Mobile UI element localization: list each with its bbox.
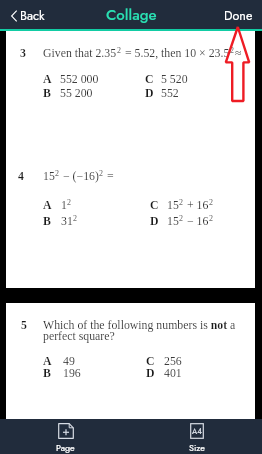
staticText: Given that 2.35	[43, 46, 117, 59]
staticText: Back	[20, 7, 45, 25]
other: Page size	[190, 423, 204, 439]
button[interactable]: Page size	[131, 419, 262, 454]
staticText: D	[145, 86, 154, 99]
staticText: 2	[67, 198, 72, 207]
staticText: 2	[230, 46, 235, 55]
staticText: A	[43, 198, 52, 211]
staticText: C	[145, 72, 154, 85]
staticText: D	[146, 366, 155, 379]
staticText: C	[150, 198, 159, 211]
staticText: B	[43, 366, 51, 379]
staticText: C	[146, 354, 155, 367]
staticText: − (−16)	[60, 169, 99, 182]
staticText: 2	[73, 214, 78, 223]
staticText: 401	[164, 366, 182, 379]
staticText: A	[43, 354, 52, 367]
staticText: A	[43, 72, 52, 85]
staticText: + 16	[184, 198, 209, 211]
staticText: 5 520	[161, 72, 188, 85]
staticText: 4	[18, 169, 24, 182]
staticText: 2	[179, 198, 184, 207]
staticText: 15	[43, 169, 55, 182]
staticText: 552	[161, 86, 179, 99]
staticText: B	[43, 86, 51, 99]
staticText: 2	[209, 214, 214, 223]
staticText: − 16	[184, 214, 209, 227]
staticText: 2	[209, 198, 214, 207]
staticText: 2	[179, 214, 184, 223]
staticText: 256	[164, 354, 182, 367]
staticText: A4	[192, 426, 202, 437]
staticText: 2	[55, 169, 60, 178]
staticText: Done	[224, 7, 253, 25]
staticText: 15	[167, 198, 179, 211]
staticText: 196	[63, 366, 81, 379]
staticText: 49	[63, 354, 75, 367]
button[interactable]: Done	[224, 7, 253, 25]
staticText: 3	[20, 46, 26, 59]
staticText: 2	[99, 169, 104, 178]
staticText: Which of the following numbers is not a …	[43, 318, 243, 342]
staticText: Size	[189, 441, 205, 454]
button[interactable]: Add page	[0, 419, 131, 454]
staticText: 15	[167, 214, 179, 227]
staticText: 31	[61, 214, 73, 227]
staticText: D	[150, 214, 159, 227]
other: Add page	[58, 423, 74, 439]
staticText: 55 200	[60, 86, 93, 99]
staticText: Collage	[106, 4, 157, 26]
staticText: 552 000	[60, 72, 99, 85]
staticText: = 5.52, then 10 × 23.5	[122, 46, 230, 59]
staticText: Page	[56, 441, 75, 454]
staticText: B	[43, 214, 51, 227]
staticText: =	[104, 169, 114, 182]
staticText: 1	[61, 198, 67, 211]
staticText: 5	[21, 318, 27, 331]
staticText: 2	[117, 46, 122, 55]
button[interactable]: Back	[11, 7, 45, 25]
staticText: ≈	[235, 46, 242, 59]
